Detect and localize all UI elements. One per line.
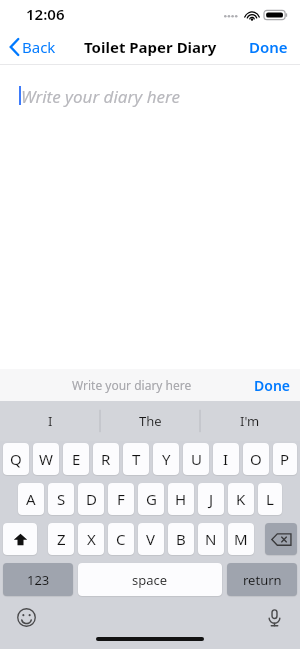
staticText: space xyxy=(132,571,168,589)
staticText: Write your diary here xyxy=(21,85,180,108)
button[interactable]: F xyxy=(108,483,134,515)
button[interactable]: N xyxy=(198,523,224,555)
button[interactable]: P xyxy=(273,443,297,475)
staticText: C xyxy=(116,529,126,549)
button[interactable]: S xyxy=(48,483,74,515)
button[interactable]: I xyxy=(213,443,239,475)
button[interactable]: The xyxy=(100,401,200,441)
staticText: E xyxy=(72,449,81,469)
staticText: W xyxy=(39,449,53,469)
button[interactable]: R xyxy=(93,443,119,475)
staticText: 12:06 xyxy=(26,4,65,24)
staticText: A xyxy=(26,489,36,509)
button[interactable]: L xyxy=(258,483,282,515)
button[interactable]: H xyxy=(168,483,194,515)
button[interactable]: C xyxy=(108,523,134,555)
staticText: Back xyxy=(22,37,56,57)
staticText: G xyxy=(146,489,157,509)
button[interactable]: Done xyxy=(237,32,300,62)
staticText: K xyxy=(236,489,246,509)
button[interactable]: B xyxy=(168,523,194,555)
button[interactable]: Z xyxy=(48,523,74,555)
staticText: Write your diary here xyxy=(72,377,192,393)
staticText: X xyxy=(87,529,96,549)
button[interactable]: Done xyxy=(245,371,300,400)
button[interactable]: T xyxy=(123,443,149,475)
staticText: D xyxy=(86,489,97,509)
staticText: N xyxy=(205,529,217,549)
staticText: L xyxy=(266,489,274,509)
staticText: I'm xyxy=(240,412,260,430)
button[interactable]: O xyxy=(243,443,269,475)
button[interactable]: 123 xyxy=(3,563,73,596)
staticText: R xyxy=(101,449,111,469)
button[interactable]: Back xyxy=(0,33,66,61)
button[interactable]: J xyxy=(198,483,224,515)
staticText: M xyxy=(234,529,248,549)
button[interactable]: U xyxy=(183,443,209,475)
button[interactable]: Y xyxy=(153,443,179,475)
staticText: J xyxy=(209,489,214,509)
button[interactable]: Q xyxy=(3,443,29,475)
staticText: T xyxy=(132,449,141,469)
staticText: I xyxy=(223,449,229,469)
button[interactable]: Backspace xyxy=(265,523,297,555)
staticText: H xyxy=(175,489,187,509)
staticText: S xyxy=(57,489,66,509)
staticText: O xyxy=(250,449,262,469)
staticText: Done xyxy=(249,37,288,57)
staticText: Done xyxy=(254,376,291,395)
staticText: F xyxy=(117,489,125,509)
button[interactable]: return xyxy=(227,563,297,596)
button[interactable]: D xyxy=(78,483,104,515)
staticText: B xyxy=(176,529,186,549)
staticText: Y xyxy=(162,449,171,469)
staticText: P xyxy=(280,449,290,469)
staticText: return xyxy=(243,571,282,589)
button[interactable]: I xyxy=(0,401,100,441)
staticText: Z xyxy=(57,529,66,549)
staticText: The xyxy=(139,412,162,430)
button[interactable]: space xyxy=(78,563,222,596)
staticText: Toilet Paper Diary xyxy=(84,37,217,57)
button[interactable]: W xyxy=(33,443,59,475)
button[interactable]: K xyxy=(228,483,254,515)
button[interactable]: V xyxy=(138,523,164,555)
button[interactable]: Emoji xyxy=(13,604,39,630)
button[interactable]: E xyxy=(63,443,89,475)
staticText: I xyxy=(48,412,53,430)
button[interactable]: M xyxy=(228,523,254,555)
button[interactable]: Shift xyxy=(3,523,37,555)
staticText: 123 xyxy=(27,571,50,589)
staticText: Q xyxy=(10,449,22,469)
button[interactable]: I'm xyxy=(200,401,300,441)
staticText: V xyxy=(146,529,156,549)
button[interactable]: A xyxy=(18,483,44,515)
button[interactable]: G xyxy=(138,483,164,515)
staticText: U xyxy=(191,449,202,469)
button[interactable]: X xyxy=(78,523,104,555)
button[interactable]: Dictation xyxy=(261,604,287,630)
